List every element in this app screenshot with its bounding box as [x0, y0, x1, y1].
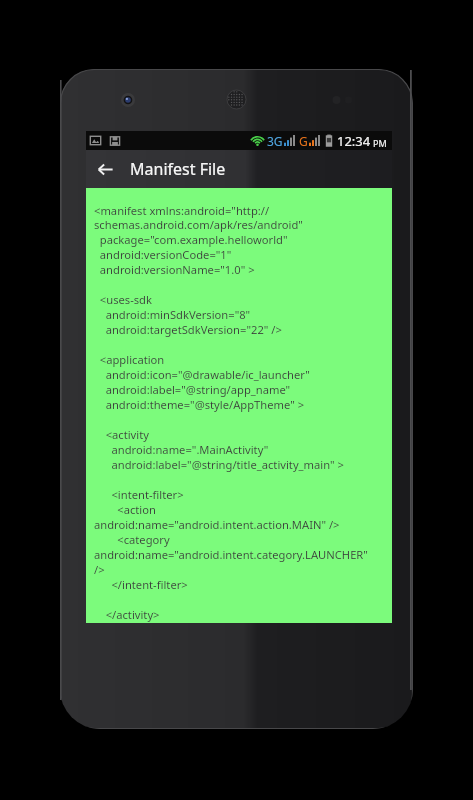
staticText: G	[299, 133, 308, 149]
button[interactable]: Back	[86, 150, 124, 188]
staticText: <manifest xmlns:android="http:// schemas…	[94, 203, 388, 623]
staticText: PM	[373, 137, 387, 149]
staticText: Manifest File	[130, 158, 226, 180]
staticText: 3G	[267, 133, 283, 149]
staticText: 12:34	[337, 132, 371, 150]
